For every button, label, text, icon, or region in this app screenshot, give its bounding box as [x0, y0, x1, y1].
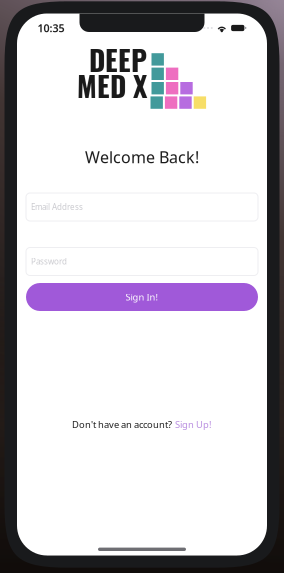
staticText: MED X	[77, 64, 147, 106]
staticText: Don't have an account?	[72, 418, 172, 430]
button[interactable]: Sign In!	[26, 283, 258, 311]
staticText: Email Address	[31, 202, 83, 212]
staticText: Sign In!	[125, 291, 158, 303]
button[interactable]: Sign Up!	[175, 418, 212, 430]
staticText: DEEP	[89, 38, 147, 80]
staticText: Welcome Back!	[85, 146, 199, 168]
staticText: 10:35	[37, 21, 64, 35]
staticText: Sign Up!	[175, 418, 212, 430]
staticText: Password	[31, 256, 67, 267]
